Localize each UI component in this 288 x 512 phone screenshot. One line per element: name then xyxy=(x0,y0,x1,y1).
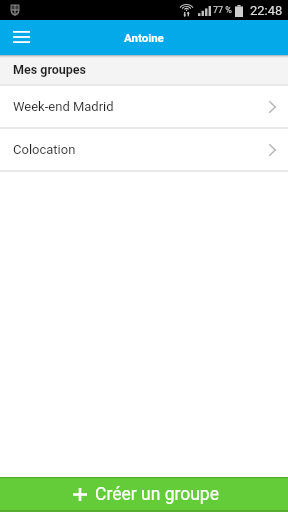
button[interactable]: Week-end Madrid xyxy=(0,86,288,127)
staticText: Mes groupes xyxy=(13,62,87,77)
staticText: 77 % xyxy=(213,5,232,16)
staticText: Antoine xyxy=(124,31,164,44)
staticText: Week-end Madrid xyxy=(13,99,114,114)
button[interactable]: Colocation xyxy=(0,129,288,170)
button[interactable]: Open navigation menu xyxy=(0,20,42,55)
button[interactable]: Créer un groupe xyxy=(0,477,288,512)
staticText: Créer un groupe xyxy=(95,484,219,505)
staticText: 22:48 xyxy=(250,3,283,18)
staticText: Colocation xyxy=(13,142,76,157)
